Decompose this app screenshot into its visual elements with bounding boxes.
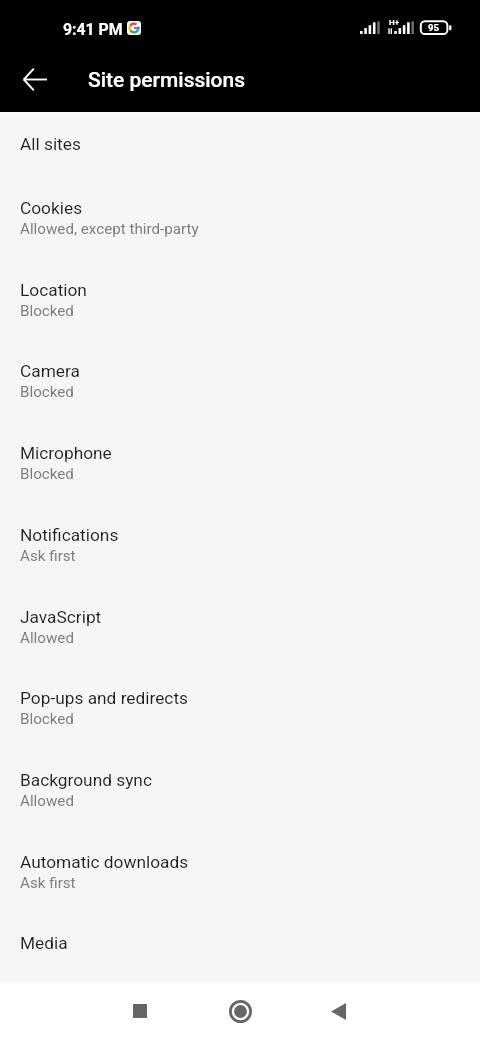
- staticText: Automatic downloads: [20, 852, 189, 872]
- staticText: 9:41 PM: [63, 20, 123, 39]
- staticText: Blocked: [20, 710, 74, 728]
- button[interactable]: Media: [0, 911, 480, 975]
- button[interactable]: Back: [9, 53, 61, 105]
- staticText: Location: [20, 280, 87, 300]
- button[interactable]: Cookies: [0, 176, 480, 258]
- button[interactable]: Home: [210, 982, 270, 1040]
- button[interactable]: Background sync: [0, 748, 480, 830]
- button[interactable]: Notifications: [0, 503, 480, 585]
- staticText: Site permissions: [88, 68, 246, 93]
- staticText: H+: [389, 18, 400, 27]
- staticText: JavaScript: [20, 607, 102, 627]
- button[interactable]: Location: [0, 258, 480, 340]
- staticText: 95: [428, 22, 440, 33]
- staticText: Allowed, except third-party: [20, 220, 199, 238]
- staticText: Microphone: [20, 443, 112, 463]
- staticText: Blocked: [20, 465, 74, 483]
- staticText: Camera: [20, 361, 80, 381]
- staticText: Pop-ups and redirects: [20, 688, 188, 708]
- button[interactable]: Pop-ups and redirects: [0, 666, 480, 748]
- button[interactable]: Camera: [0, 339, 480, 421]
- staticText: Blocked: [20, 302, 74, 320]
- staticText: All sites: [20, 134, 81, 154]
- button[interactable]: Microphone: [0, 421, 480, 503]
- button[interactable]: Automatic downloads: [0, 830, 480, 912]
- button[interactable]: Back: [308, 982, 368, 1040]
- button[interactable]: JavaScript: [0, 585, 480, 667]
- staticText: Notifications: [20, 525, 119, 545]
- staticText: Ask first: [20, 874, 76, 892]
- staticText: Cookies: [20, 198, 83, 218]
- button[interactable]: All sites: [0, 112, 480, 176]
- staticText: Allowed: [20, 792, 74, 810]
- staticText: Background sync: [20, 770, 152, 790]
- staticText: Ask first: [20, 547, 76, 565]
- staticText: Blocked: [20, 383, 74, 401]
- staticText: Allowed: [20, 629, 74, 647]
- staticText: Media: [20, 933, 68, 953]
- button[interactable]: Recent apps: [110, 982, 170, 1040]
